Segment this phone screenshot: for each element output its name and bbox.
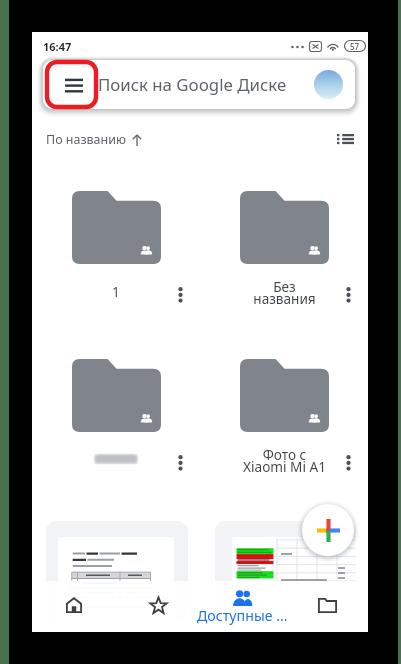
button[interactable]: Создать [302, 504, 354, 556]
button[interactable]: Меню [43, 60, 355, 109]
button[interactable]: Ещё [168, 283, 192, 307]
button[interactable]: Ещё [168, 451, 192, 475]
button[interactable] [46, 521, 188, 621]
staticText: 1 [112, 282, 120, 301]
staticText: Поиск на Google Диске [98, 73, 287, 96]
staticText: Фото с Xiaomi Mi A1 [243, 445, 326, 476]
button[interactable]: Доступные ... [182, 606, 302, 626]
staticText: 16:47 [43, 39, 72, 54]
staticText: 57 [350, 41, 360, 52]
button[interactable]: Ещё [336, 283, 360, 307]
staticText: Без названия [253, 277, 316, 308]
button[interactable]: Вид списка [331, 125, 359, 153]
button[interactable]: Ещё [336, 451, 360, 475]
button[interactable]: Помеченные [133, 588, 184, 628]
staticText: Доступные ... [197, 606, 288, 625]
button[interactable]: По названию [46, 131, 143, 148]
staticText: По названию [46, 131, 126, 148]
button[interactable] [215, 521, 356, 621]
button[interactable]: Главная [50, 589, 98, 627]
button[interactable]: Доступные мне [216, 582, 269, 620]
button[interactable]: Меню [56, 69, 92, 101]
button[interactable]: Аккаунт [314, 70, 343, 99]
button[interactable]: Файлы [302, 590, 353, 627]
